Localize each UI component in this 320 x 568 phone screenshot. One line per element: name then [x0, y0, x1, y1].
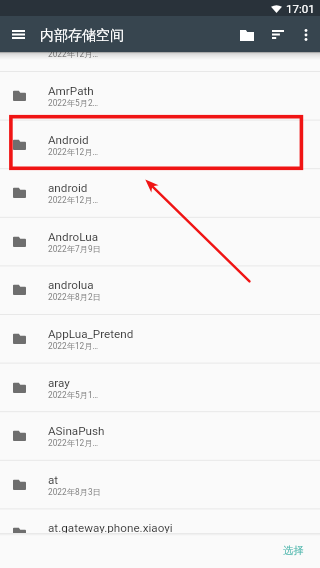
staticText: 2022年8月3日: [48, 487, 101, 497]
button[interactable]: 选择: [279, 540, 308, 561]
button[interactable]: More options: [293, 22, 318, 47]
staticText: 选择: [283, 544, 304, 557]
button[interactable]: AppLua_Pretend: [0, 314, 320, 363]
staticText: 2022年12月…: [48, 195, 99, 205]
button[interactable]: android: [0, 168, 320, 217]
staticText: androlua: [48, 278, 94, 292]
staticText: Android: [48, 133, 89, 147]
button[interactable]: androlua: [0, 265, 320, 314]
staticText: at: [48, 473, 59, 487]
staticText: 2022年12月…: [48, 147, 99, 157]
staticText: aray: [48, 376, 70, 390]
staticText: 2022年8月2日: [48, 292, 101, 302]
button[interactable]: Sort: [265, 22, 290, 47]
staticText: at.gateway.phone.xiaoyi: [48, 521, 173, 533]
staticText: AppLua_Pretend: [48, 327, 134, 341]
staticText: 2022年12月…: [48, 52, 99, 59]
staticText: android: [48, 181, 88, 195]
staticText: AmrPath: [48, 84, 94, 98]
button[interactable]: at: [0, 460, 320, 509]
button[interactable]: New folder: [234, 22, 259, 47]
staticText: 2022年12月…: [48, 438, 99, 448]
staticText: 2022年7月9日: [48, 244, 101, 254]
button[interactable]: Menu: [6, 22, 31, 47]
staticText: 2022年5月2…: [48, 98, 99, 108]
button[interactable]: Android: [0, 120, 320, 169]
button[interactable]: ASinaPush: [0, 411, 320, 460]
staticText: 17:01: [286, 2, 315, 15]
button[interactable]: at.gateway.phone.xiaoyi: [0, 508, 320, 533]
staticText: 内部存储空间: [40, 27, 124, 45]
staticText: ASinaPush: [48, 424, 105, 438]
staticText: AndroLua: [48, 230, 99, 244]
staticText: 2022年12月…: [48, 341, 99, 351]
button[interactable]: AndroLua: [0, 217, 320, 266]
button[interactable]: AmrBrowser: [0, 52, 320, 71]
button[interactable]: aray: [0, 363, 320, 412]
staticText: 2022年5月1…: [48, 390, 99, 400]
button[interactable]: AmrPath: [0, 71, 320, 120]
